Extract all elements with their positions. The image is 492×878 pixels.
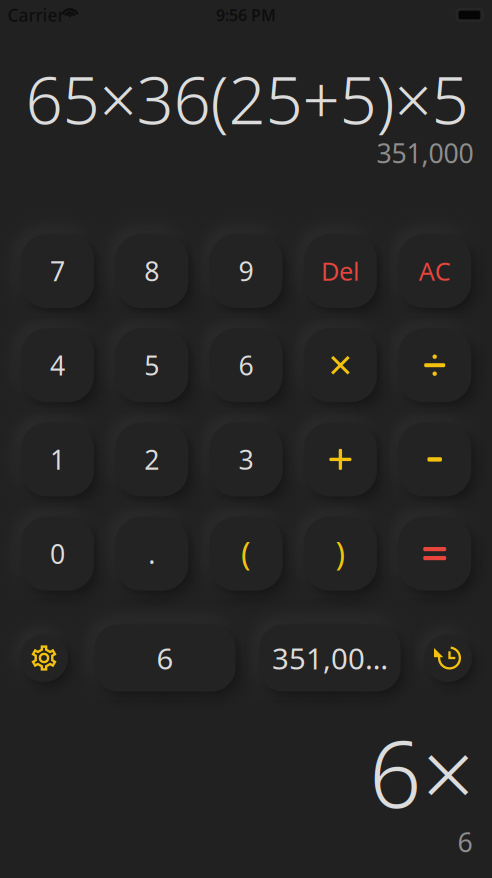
button[interactable]: 3: [199, 411, 294, 507]
button[interactable]: 1: [10, 411, 105, 507]
button[interactable]: 4: [10, 317, 105, 413]
button[interactable]: 6: [199, 317, 294, 413]
staticText: 7: [50, 253, 65, 289]
staticText: AC: [419, 254, 451, 288]
button[interactable]: 5: [104, 317, 199, 413]
button[interactable]: Subtract: [387, 411, 482, 507]
button[interactable]: Settings: [11, 625, 77, 691]
button[interactable]: 7: [10, 223, 105, 319]
button[interactable]: Equals: [387, 506, 482, 602]
button[interactable]: 9: [199, 223, 294, 319]
button[interactable]: Divide: [387, 317, 482, 413]
button[interactable]: History: [415, 625, 481, 691]
button[interactable]: Multiply: [293, 317, 388, 413]
button[interactable]: ): [293, 506, 388, 602]
staticText: 1: [50, 442, 65, 477]
staticText: 351,000: [376, 135, 473, 171]
button[interactable]: 2: [104, 411, 199, 507]
button[interactable]: 0: [10, 506, 105, 602]
staticText: ): [335, 532, 345, 575]
button[interactable]: .: [104, 506, 199, 602]
staticText: 8: [144, 253, 159, 289]
button[interactable]: 6: [83, 613, 246, 702]
staticText: 5: [144, 347, 159, 383]
staticText: 6: [457, 824, 472, 860]
staticText: Carrier: [7, 3, 64, 26]
staticText: 6×: [369, 711, 475, 833]
staticText: 351,00…: [272, 638, 388, 677]
staticText: 3: [239, 442, 254, 477]
button[interactable]: AC: [387, 223, 482, 319]
button[interactable]: 351,00…: [248, 613, 411, 702]
staticText: 6: [156, 638, 173, 677]
staticText: 65×36(25+5)×5: [25, 56, 468, 142]
button[interactable]: (: [199, 506, 294, 602]
staticText: Del: [321, 254, 360, 288]
staticText: 9:56 PM: [216, 4, 276, 26]
staticText: 9: [239, 253, 254, 289]
staticText: 0: [50, 536, 65, 571]
staticText: .: [148, 536, 155, 571]
button[interactable]: Add: [293, 411, 388, 507]
staticText: 6: [239, 347, 254, 383]
staticText: (: [241, 532, 251, 575]
staticText: 2: [144, 442, 159, 477]
button[interactable]: 8: [104, 223, 199, 319]
staticText: 4: [50, 347, 65, 383]
button[interactable]: Del: [293, 223, 388, 319]
